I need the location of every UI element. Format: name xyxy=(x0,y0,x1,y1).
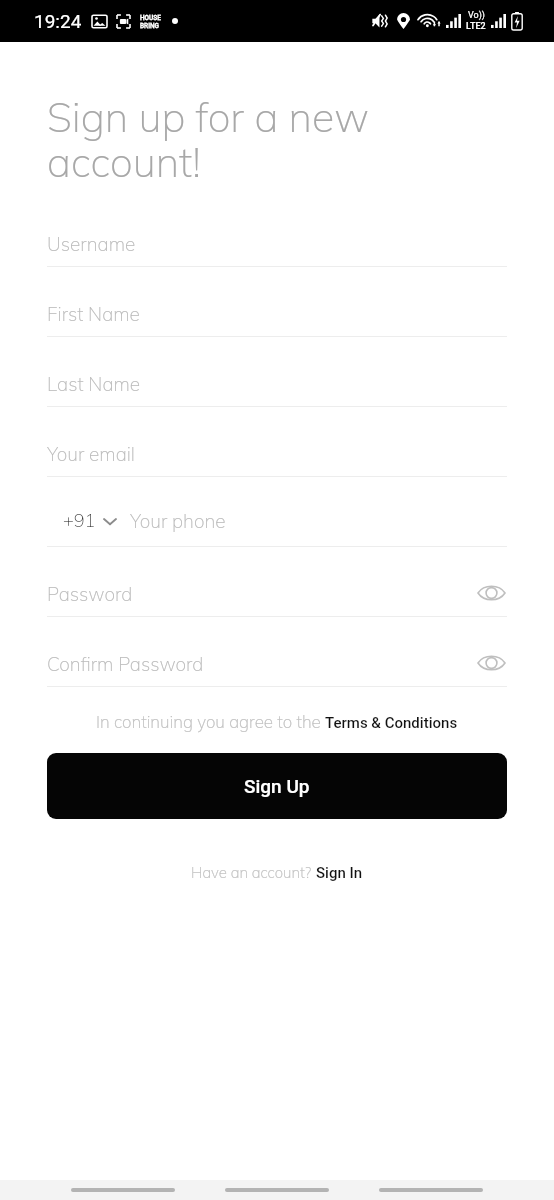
button[interactable]: Show password xyxy=(475,647,507,679)
staticText: Sign In xyxy=(316,864,363,882)
button[interactable]: First Name xyxy=(47,283,507,353)
button[interactable]: Have an account? xyxy=(191,863,363,882)
button[interactable]: Show password xyxy=(475,577,507,609)
button[interactable]: Confirm Password xyxy=(47,633,507,703)
other: Select country code xyxy=(102,513,118,529)
button[interactable]: Recent apps xyxy=(379,1180,483,1200)
staticText: 19:24 xyxy=(34,10,82,32)
staticText: First Name xyxy=(47,302,140,326)
staticText: Your email xyxy=(47,442,136,466)
staticText: Username xyxy=(47,232,136,256)
staticText: Vo)) xyxy=(468,10,485,21)
button[interactable]: Password xyxy=(47,563,507,633)
button[interactable]: Your email xyxy=(47,423,507,493)
button[interactable]: Back xyxy=(71,1180,175,1200)
staticText: +91 xyxy=(63,509,96,532)
button[interactable]: +91 xyxy=(47,509,118,532)
staticText: Password xyxy=(47,582,133,606)
button[interactable]: Last Name xyxy=(47,353,507,423)
staticText: Confirm Password xyxy=(47,652,204,676)
staticText: HOUSE xyxy=(140,14,161,22)
staticText: Sign up for a new account! xyxy=(47,91,404,187)
button[interactable]: In continuing you agree to the Terms & C… xyxy=(96,711,458,732)
button[interactable]: Username xyxy=(47,213,507,283)
staticText: Your phone xyxy=(130,509,226,533)
button[interactable]: Home xyxy=(225,1180,329,1200)
staticText: Have an account? xyxy=(191,863,316,882)
button[interactable]: Sign Up xyxy=(47,753,507,819)
staticText: Sign Up xyxy=(244,775,310,797)
staticText: BRING xyxy=(140,22,160,30)
staticText: LTE2 xyxy=(466,21,486,32)
button[interactable]: Your phone xyxy=(130,495,507,546)
staticText: Last Name xyxy=(47,372,141,396)
